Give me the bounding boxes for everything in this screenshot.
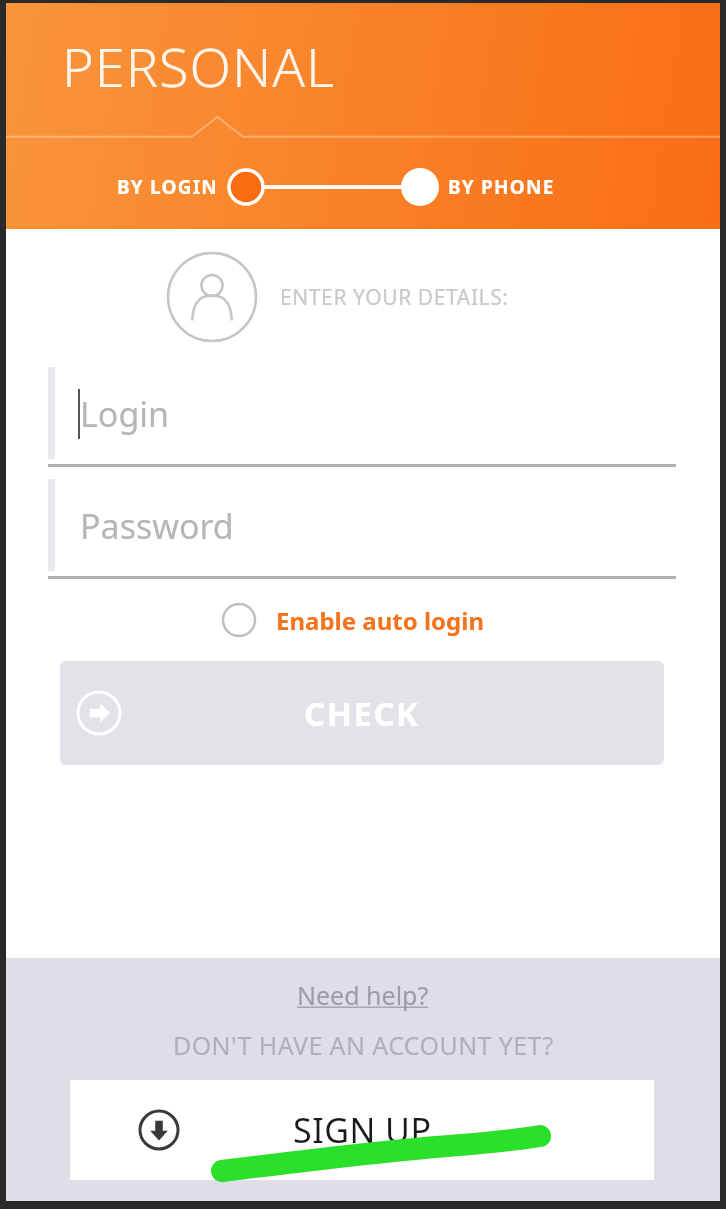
- staticText: DON'T HAVE AN ACCOUNT YET?: [173, 1028, 554, 1062]
- button[interactable]: Login: [48, 367, 676, 467]
- button[interactable]: Need help?: [297, 978, 429, 1012]
- button[interactable]: BY PHONE: [448, 174, 720, 200]
- button[interactable]: CHECK: [60, 661, 664, 765]
- button[interactable]: SIGN UP: [70, 1080, 654, 1180]
- staticText: BY PHONE: [448, 174, 555, 200]
- staticText: Enable auto login: [276, 604, 485, 637]
- button[interactable]: Enable auto login: [220, 601, 485, 639]
- button[interactable]: Password: [48, 479, 676, 579]
- staticText: PERSONAL: [62, 29, 335, 103]
- staticText: ENTER YOUR DETAILS:: [280, 283, 509, 312]
- button[interactable]: BY LOGIN: [6, 174, 218, 200]
- staticText: CHECK: [304, 691, 420, 736]
- staticText: Login: [80, 391, 170, 437]
- staticText: SIGN UP: [293, 1107, 432, 1153]
- button[interactable]: Switch login mode: [218, 163, 448, 211]
- staticText: BY LOGIN: [117, 174, 218, 200]
- staticText: Need help?: [297, 978, 429, 1012]
- staticText: Password: [80, 503, 234, 549]
